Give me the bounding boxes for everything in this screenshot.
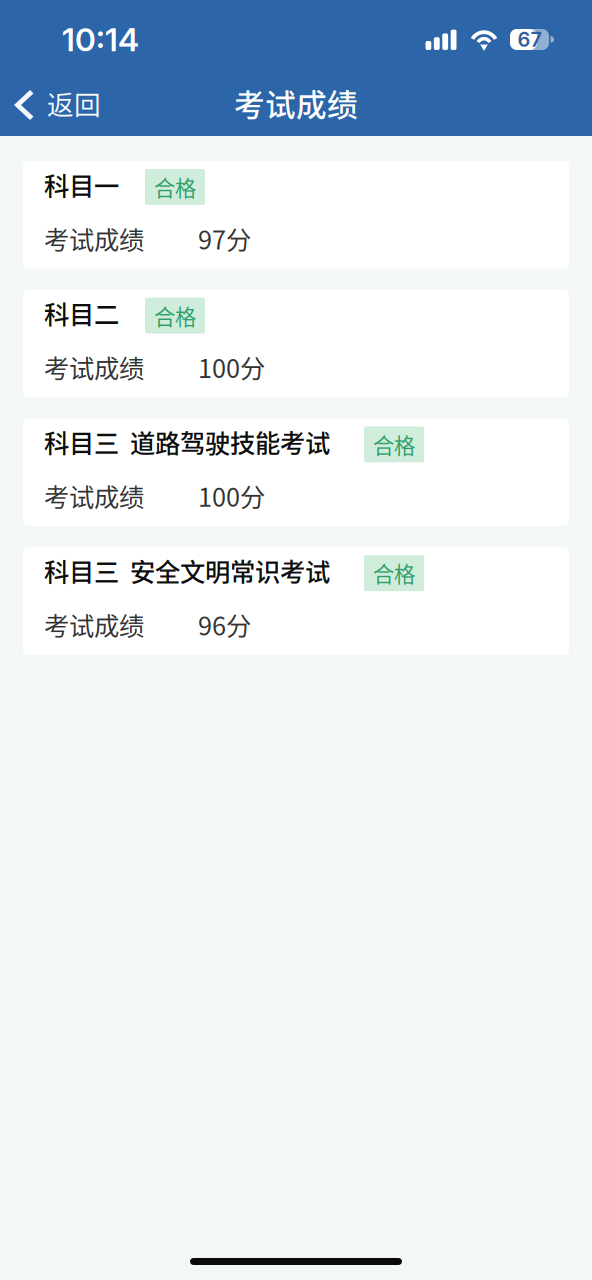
staticText: 科目三 [44, 423, 119, 460]
staticText: 考试成绩 [44, 349, 144, 385]
staticText: 考试成绩 [44, 477, 144, 514]
staticText: 合格 [373, 429, 415, 460]
staticText: 科目一 [44, 166, 119, 203]
staticText: 安全文明常识考试 [130, 552, 330, 589]
staticText: 100分 [198, 349, 265, 385]
button[interactable]: 科目一 [23, 161, 569, 269]
staticText: 67 [517, 27, 541, 52]
staticText: 道路驾驶技能考试 [130, 423, 330, 460]
staticText: 合格 [373, 558, 415, 588]
staticText: 96分 [198, 606, 251, 643]
staticText: 10:14 [62, 20, 139, 59]
staticText: 97分 [198, 220, 251, 257]
staticText: 考试成绩 [44, 220, 144, 257]
button[interactable]: 科目三 [23, 547, 569, 655]
staticText: 科目二 [44, 295, 119, 331]
staticText: 合格 [154, 172, 196, 202]
staticText: 科目三 [44, 552, 119, 589]
staticText: 返回 [47, 84, 101, 122]
staticText: 考试成绩 [234, 81, 358, 125]
button[interactable]: 科目二 [23, 290, 569, 397]
button[interactable]: 返回 [0, 70, 111, 136]
staticText: 考试成绩 [44, 606, 144, 643]
staticText: 100分 [198, 477, 265, 514]
button[interactable]: 科目三 [23, 418, 569, 526]
staticText: 合格 [154, 300, 196, 331]
